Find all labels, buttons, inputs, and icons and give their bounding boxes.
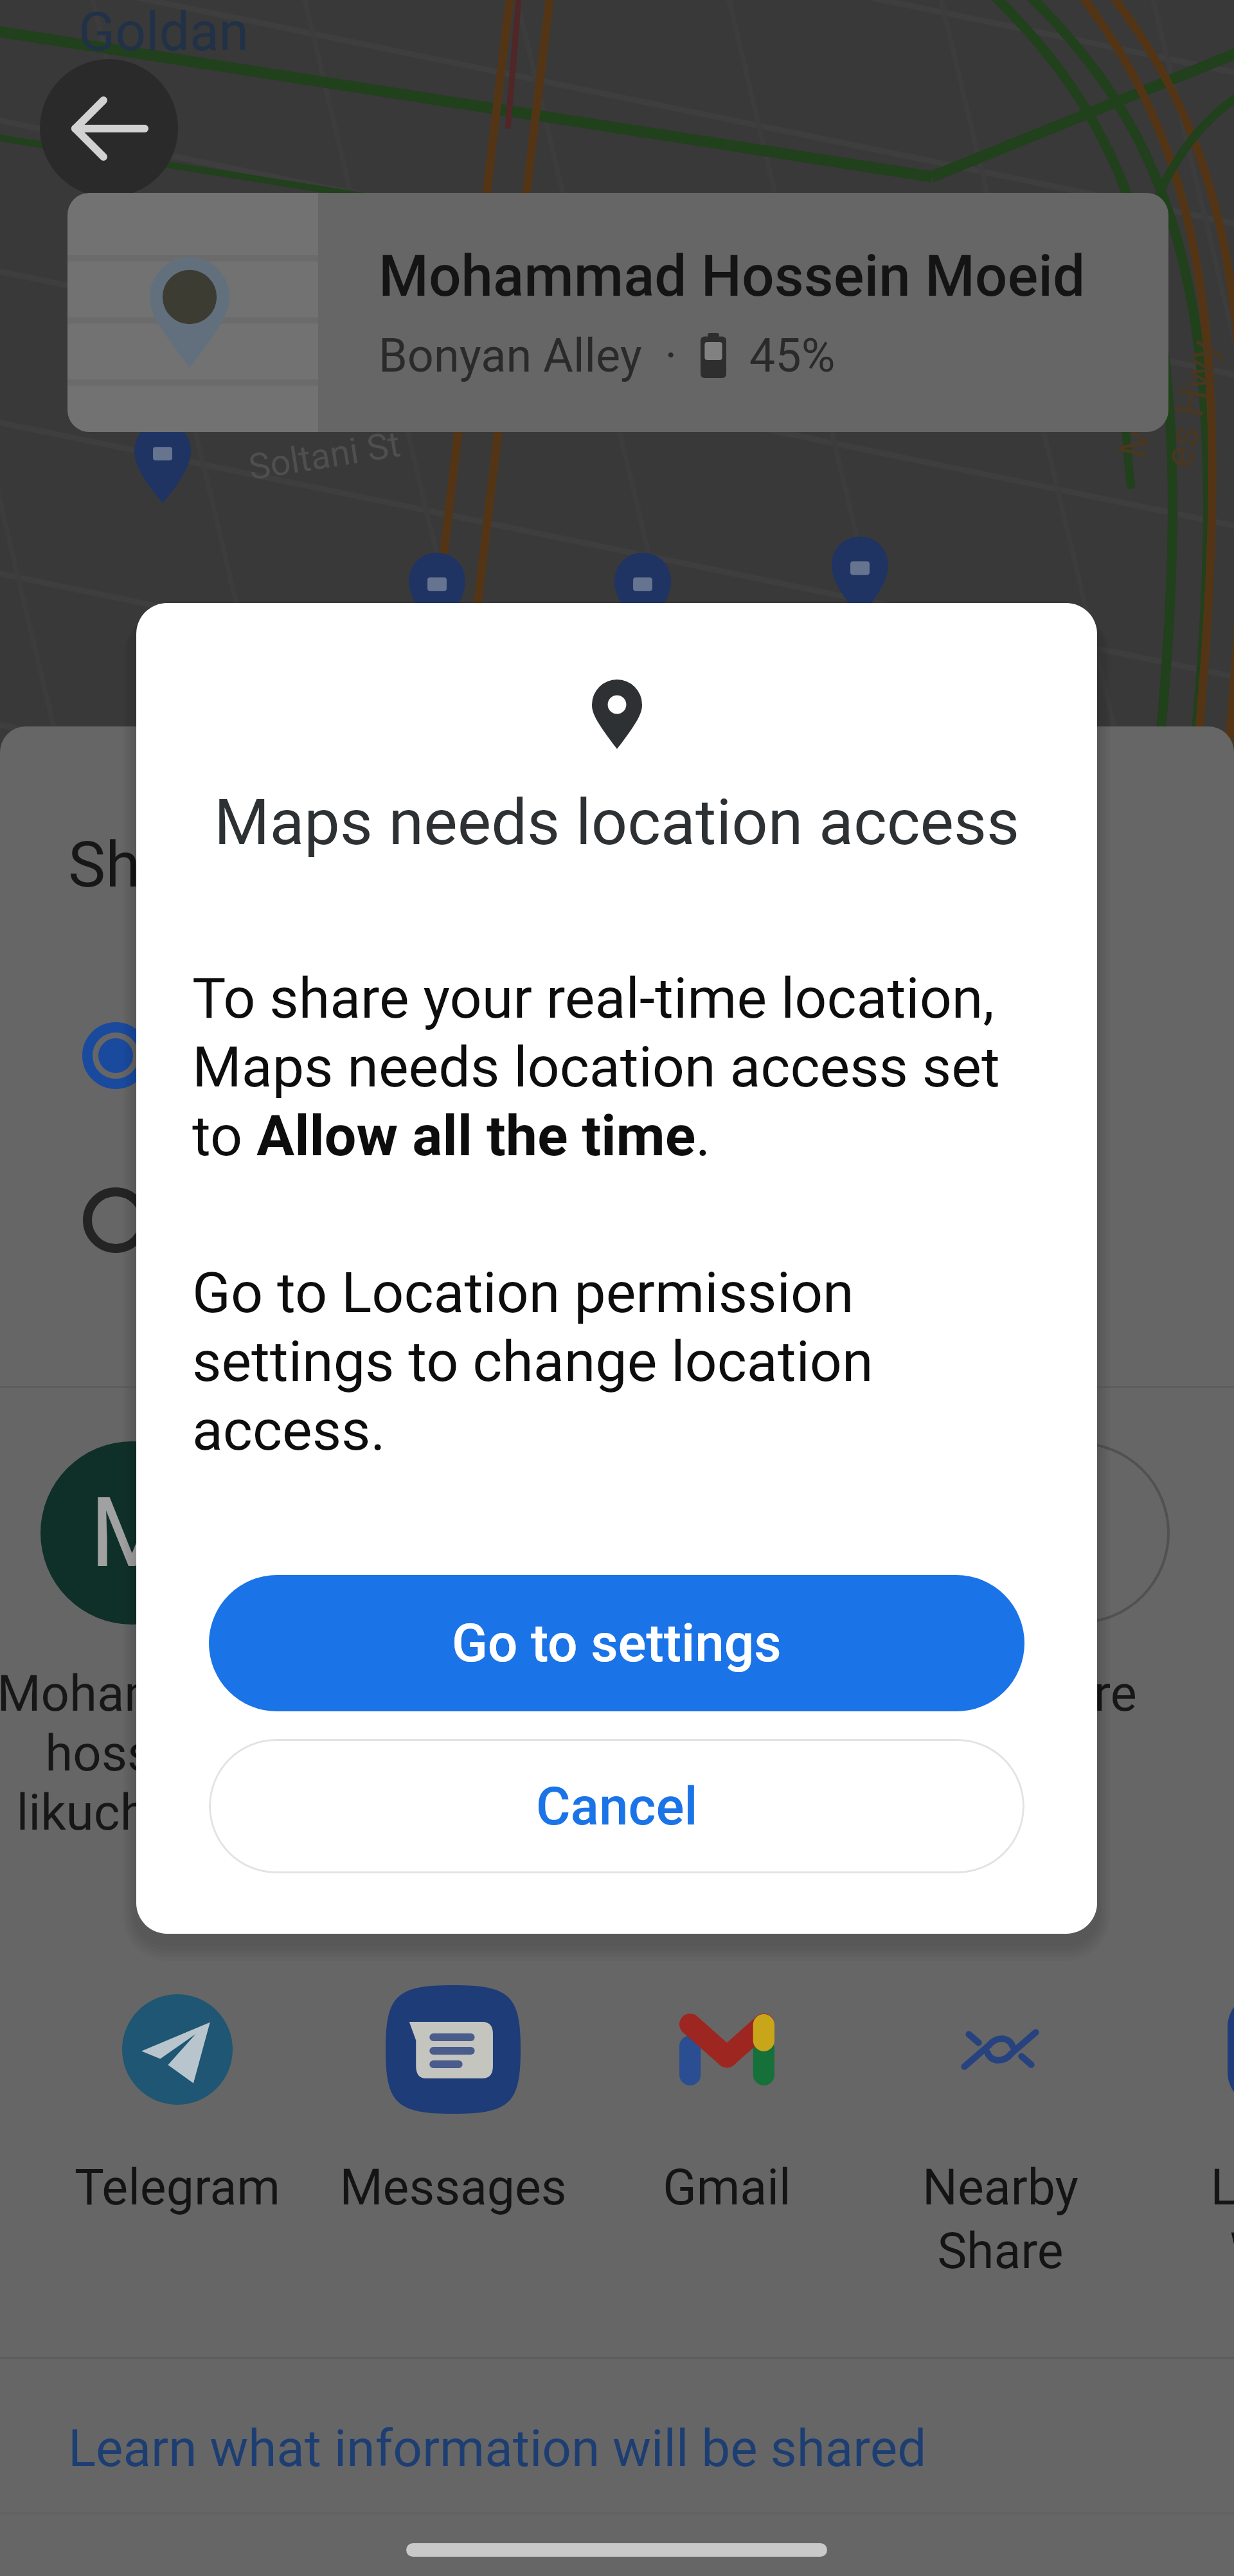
button[interactable]: Messages [316, 1985, 590, 2294]
staticText: Sara mohammadi [306, 1664, 589, 1783]
staticText: Nearby Share [922, 2159, 1078, 2280]
staticText: Mohammad hossein likuchupro [0, 1664, 268, 1842]
button[interactable]: Gmail [590, 1985, 864, 2294]
button[interactable]: Mohammad Hossein Moeid [67, 193, 1168, 432]
staticText: More [1021, 1664, 1137, 1723]
staticText: Go to settings [452, 1612, 782, 1674]
button[interactable]: Go to settings [209, 1575, 1024, 1711]
staticText: Telegram [75, 2159, 280, 2217]
button[interactable]: Sara mohammadi [290, 1441, 605, 1891]
staticText: Share your location [68, 828, 607, 902]
button[interactable]: M [0, 1441, 290, 1891]
button[interactable]: Back [40, 59, 178, 197]
staticText: Mohammad Hossein Moeid [379, 242, 1086, 309]
staticText: Until you turn this off [189, 1029, 618, 1083]
button[interactable]: Amir hosseini [605, 1441, 921, 1891]
staticText: 45% [726, 329, 836, 383]
staticText: Messages [339, 2159, 567, 2217]
button[interactable]: Link to Wi-Fi [1147, 1985, 1234, 2294]
button[interactable]: Telegram [40, 1985, 314, 2294]
staticText: Go to Location permission settings to ch… [192, 1259, 949, 1463]
staticText: Learn what information will be shared [68, 2418, 927, 2479]
staticText: Link to Wi-Fi [1210, 2159, 1234, 2280]
staticText: Maps needs location access [214, 785, 1020, 860]
staticText: Amir hosseini [670, 1664, 857, 1783]
staticText: Goldan [78, 0, 249, 63]
button[interactable]: For 1 hour [0, 1169, 1234, 1272]
staticText: M [90, 1477, 174, 1590]
button[interactable]: Nearby Share [863, 1985, 1137, 2294]
button[interactable]: Cancel [209, 1739, 1024, 1873]
button[interactable]: Learn what information will be shared [0, 2372, 1234, 2526]
staticText: Cancel [536, 1776, 698, 1837]
staticText: Modares Hwy [1109, 323, 1228, 472]
button[interactable]: More [921, 1441, 1234, 1891]
staticText: To share your real-time location, Maps n… [192, 965, 1062, 1169]
staticText: Soltani St [246, 423, 403, 489]
staticText: Gmail [663, 2159, 791, 2217]
staticText: Bonyan Alley · [379, 329, 701, 383]
button[interactable]: Until you turn this off [0, 1004, 1234, 1107]
